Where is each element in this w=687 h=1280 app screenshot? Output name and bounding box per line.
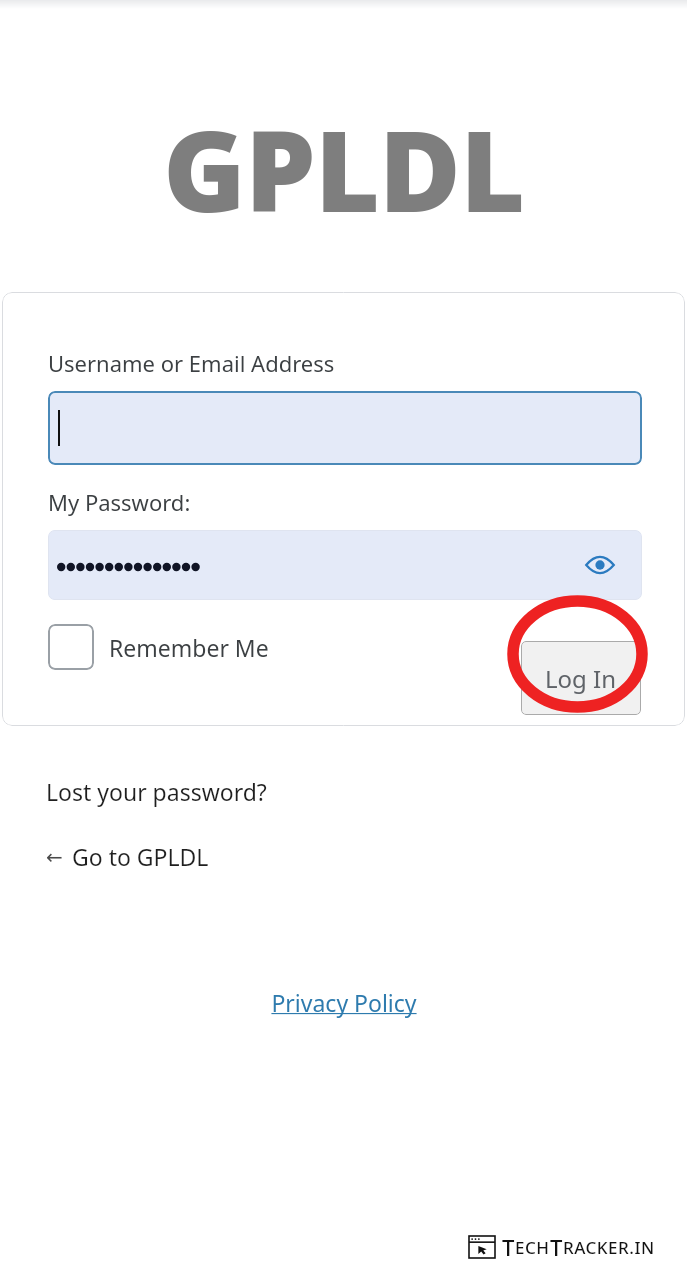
staticText: Privacy Policy xyxy=(271,987,417,1018)
staticText: My Password: xyxy=(48,487,191,517)
button[interactable]: Log In xyxy=(521,641,641,715)
button[interactable] xyxy=(48,391,642,465)
button[interactable]: Privacy Policy xyxy=(271,987,417,1018)
button[interactable]: Show password xyxy=(48,530,642,600)
staticText: Log In xyxy=(545,662,617,695)
staticText: Lost your password? xyxy=(46,776,267,807)
staticText: ← xyxy=(46,845,63,868)
staticText: Go to GPLDL xyxy=(72,841,209,872)
button[interactable]: Show password xyxy=(580,545,620,585)
staticText: RACKER.IN xyxy=(563,1236,655,1259)
button[interactable]: Lost your password? xyxy=(46,776,267,807)
staticText: Username or Email Address xyxy=(48,348,335,378)
staticText: ECH xyxy=(515,1236,550,1259)
staticText: T xyxy=(550,1232,563,1262)
button[interactable]: Remember Me xyxy=(48,624,269,670)
staticText: Remember Me xyxy=(109,632,269,663)
button[interactable]: ← xyxy=(46,841,209,872)
staticText: GPLDL xyxy=(163,92,525,245)
staticText: T xyxy=(502,1232,515,1262)
